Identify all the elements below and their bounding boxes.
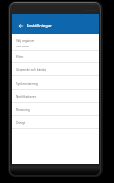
- button[interactable]: Välj regioner: [12, 34, 99, 51]
- staticText: Rensning: [16, 108, 30, 112]
- staticText: Övrigt: [16, 121, 26, 125]
- button[interactable]: Filter: [12, 50, 99, 63]
- staticText: Hela landet: [16, 44, 29, 47]
- button[interactable]: Notifikationer: [12, 90, 99, 103]
- staticText: Synkronisering: [16, 82, 38, 86]
- button[interactable]: Utseende och känsla: [12, 63, 99, 76]
- staticText: Inställningar: [27, 23, 52, 29]
- staticText: Filter: [16, 55, 24, 59]
- button[interactable]: Back: [16, 21, 26, 31]
- staticText: 34%: [84, 8, 89, 11]
- button[interactable]: Rensning: [12, 103, 99, 116]
- button[interactable]: Övrigt: [12, 116, 99, 129]
- staticText: Notifikationer: [16, 95, 37, 99]
- staticText: Utseende och känsla: [16, 68, 47, 72]
- staticText: 20:30: [90, 8, 97, 11]
- button[interactable]: Synkronisering: [12, 77, 99, 90]
- staticText: Välj regioner: [16, 39, 35, 43]
